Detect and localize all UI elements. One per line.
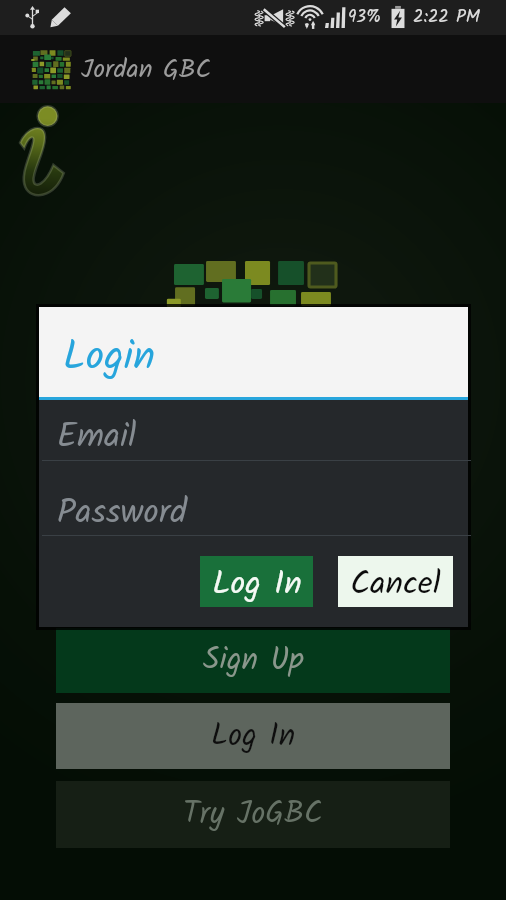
staticText: 93% <box>348 4 382 31</box>
button[interactable]: Log In <box>56 703 450 769</box>
staticText: Log In <box>212 559 302 610</box>
button[interactable]: Sign Up <box>56 628 450 693</box>
staticText: Try JoGBC <box>183 790 323 839</box>
staticText: Login <box>63 325 156 390</box>
staticText: Sign Up <box>203 636 304 685</box>
button[interactable]: Try JoGBC <box>56 781 450 848</box>
button[interactable]: Password <box>39 461 468 536</box>
button[interactable]: Info <box>18 106 70 198</box>
button[interactable]: Log In <box>200 556 313 607</box>
button[interactable]: Cancel <box>338 556 453 607</box>
staticText: Cancel <box>350 559 441 610</box>
button[interactable]: Jordan GBC <box>0 35 506 103</box>
staticText: 2:22 PM <box>413 3 480 32</box>
staticText: Jordan GBC <box>81 49 212 90</box>
button[interactable]: Email <box>39 400 468 461</box>
staticText: Password <box>57 487 187 541</box>
staticText: Email <box>57 411 137 465</box>
staticText: Log In <box>211 712 296 761</box>
